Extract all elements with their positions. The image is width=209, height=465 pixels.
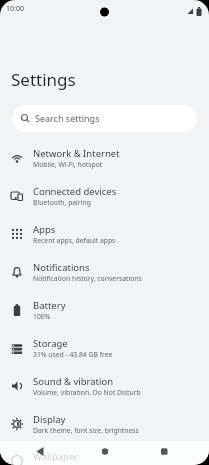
staticText: 31% used - 43.84 GB free [33,350,113,359]
staticText: Battery [33,299,66,312]
button[interactable] [69,441,139,465]
button[interactable]: Network & Internet [0,139,209,177]
staticText: Apps [33,223,56,236]
button[interactable]: Battery [0,291,209,329]
staticText: Sound & vibration [33,375,114,388]
button[interactable]: Search settings [12,105,197,132]
staticText: Storage [33,337,68,350]
button[interactable]: Connected devices [0,177,209,215]
staticText: 10:00 [6,4,24,14]
staticText: Network & Internet [33,147,120,160]
button[interactable]: Storage [0,329,209,367]
staticText: 100% [33,312,51,321]
staticText: Notifications [33,261,90,274]
staticText: Search settings [35,112,100,124]
staticText: Display [33,413,66,426]
staticText: Settings [11,68,76,91]
button[interactable]: Wallpaper [0,442,209,465]
staticText: Wallpaper [33,450,79,463]
button[interactable]: Notifications [0,253,209,291]
button[interactable]: Display [0,405,209,443]
staticText: Recent apps, default apps [33,236,116,245]
button[interactable]: Sound & vibration [0,367,209,405]
staticText: Dark theme, font size, brightness [33,426,139,435]
button[interactable] [139,441,209,465]
staticText: Notification history, conversations [33,274,142,283]
staticText: Bluetooth, pairing [33,198,91,207]
staticText: Connected devices [33,185,117,198]
button[interactable]: Apps [0,215,209,253]
button[interactable] [0,441,69,465]
staticText: Mobile, Wi-Fi, hotspot [33,160,103,169]
staticText: Volume, vibration, Do Not Disturb [33,388,141,397]
